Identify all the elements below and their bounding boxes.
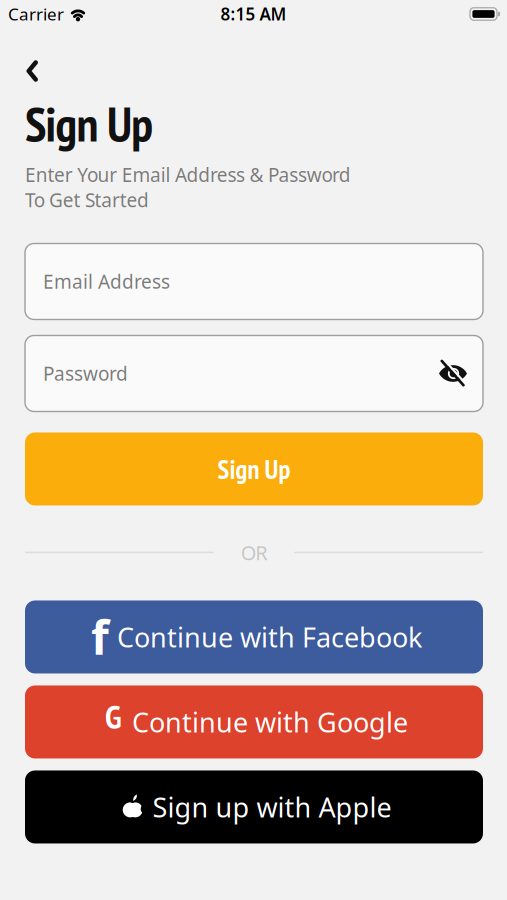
staticText: Sign up with Apple — [152, 789, 391, 825]
staticText: Carrier — [8, 3, 64, 25]
staticText: 8:15 AM — [220, 3, 286, 25]
button[interactable]: G — [25, 685, 483, 758]
staticText: Enter Your Email Address & Password To G… — [25, 162, 351, 212]
staticText: Email Address — [43, 269, 170, 294]
staticText: OR — [241, 539, 267, 566]
staticText: Sign Up — [217, 452, 290, 486]
staticText: Sign Up — [25, 92, 153, 155]
staticText: Password — [43, 361, 128, 386]
staticText: Continue with Facebook — [117, 619, 422, 655]
button[interactable]: Sign up with Apple — [25, 770, 483, 843]
staticText: Continue with Google — [132, 704, 408, 740]
button[interactable]: Back — [16, 50, 48, 92]
staticText: f — [91, 606, 109, 667]
button[interactable]: Sign Up — [25, 432, 483, 505]
button[interactable]: Show password — [438, 358, 483, 388]
button[interactable]: f — [25, 600, 483, 673]
staticText: G — [105, 695, 122, 738]
